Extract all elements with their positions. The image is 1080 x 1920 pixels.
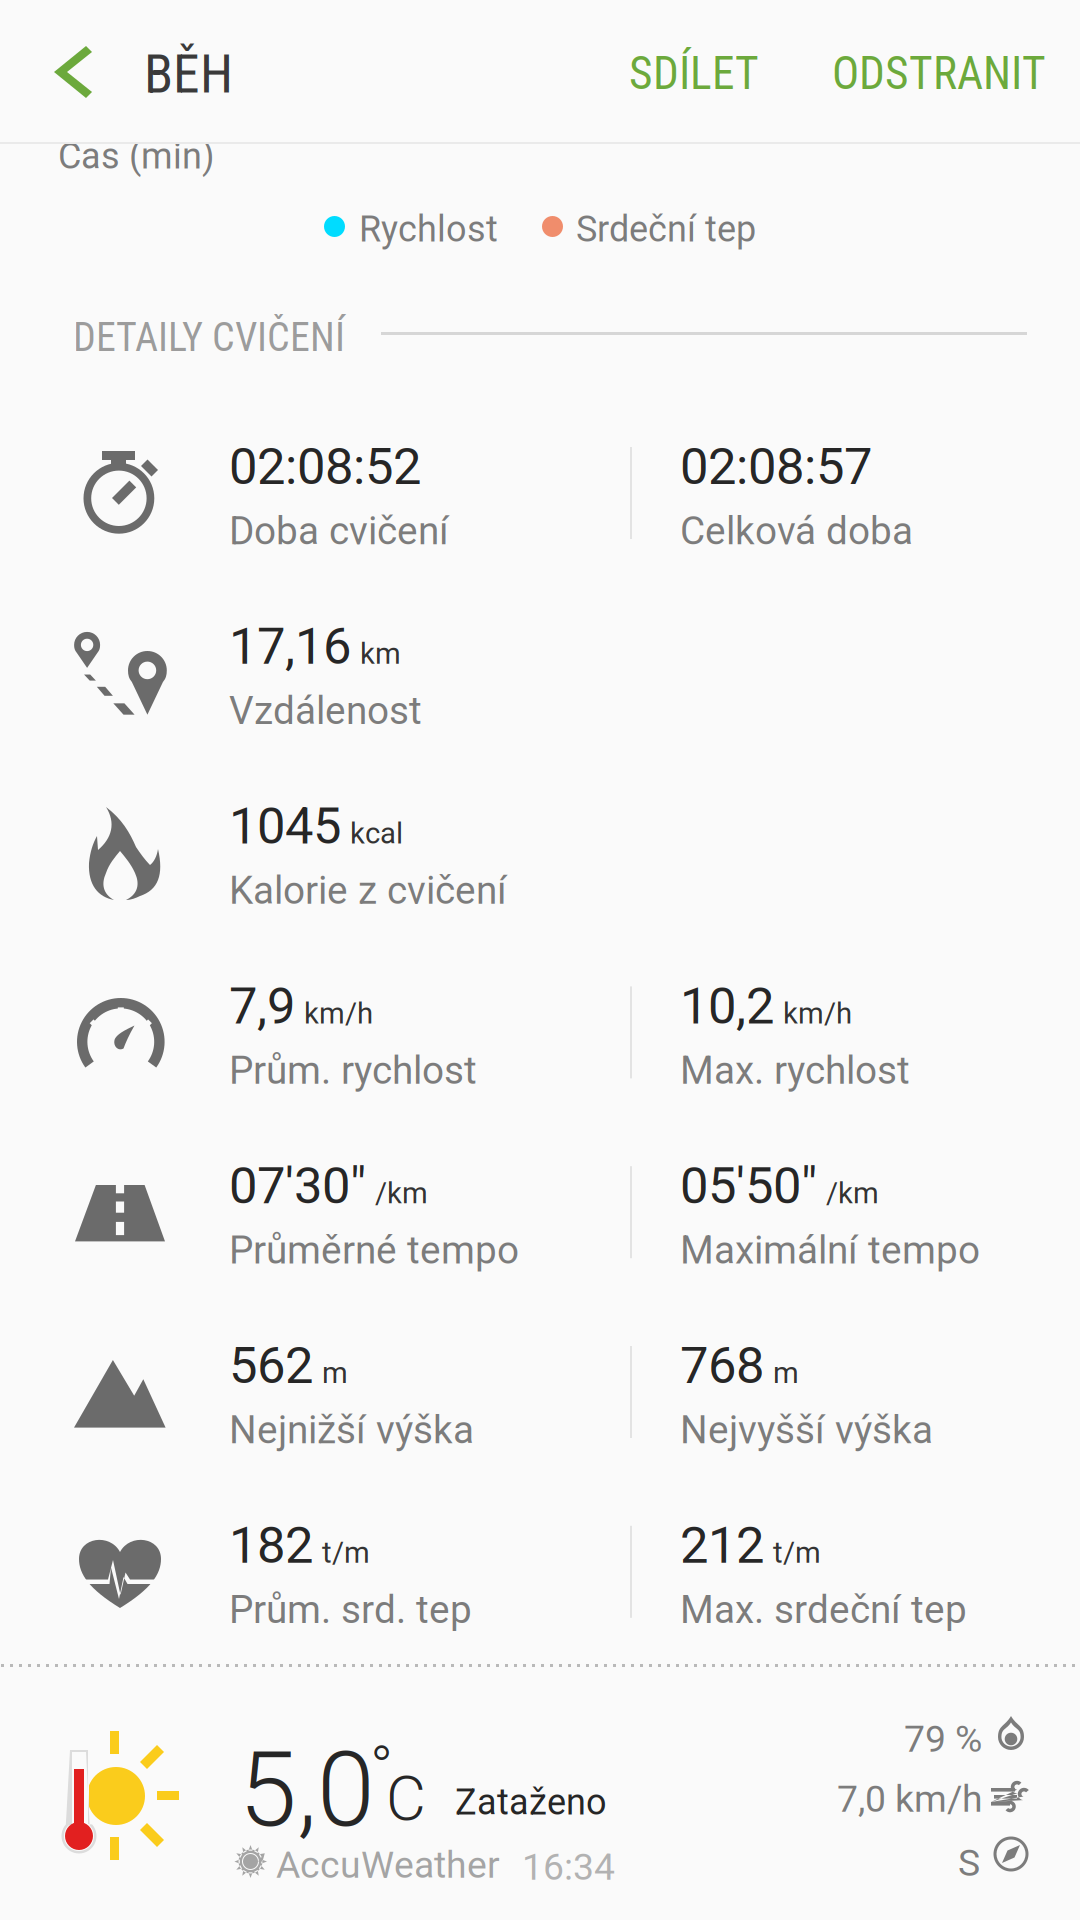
staticText: BĚH <box>144 43 233 105</box>
staticText: 10,2 <box>680 976 774 1036</box>
staticText: ODSTRANIT <box>832 47 1046 100</box>
button[interactable]: BĚH <box>144 0 253 162</box>
staticText: Max. rychlost <box>680 1048 910 1093</box>
staticText: Doba cvičení <box>229 508 449 554</box>
staticText: 17,16 <box>229 617 351 676</box>
staticText: ° <box>370 1732 393 1804</box>
staticText: 05'50" <box>680 1156 817 1216</box>
staticText: t/m <box>322 1536 370 1570</box>
staticText: 7,0 km/h <box>837 1777 983 1821</box>
staticText: Nejvyšší výška <box>680 1407 933 1453</box>
staticText: 562 <box>229 1336 313 1395</box>
staticText: m <box>773 1356 799 1390</box>
staticText: Průměrné tempo <box>229 1228 519 1273</box>
staticText: km/h <box>783 996 852 1031</box>
staticText: kcal <box>350 816 403 851</box>
button[interactable]: SDÍLET <box>603 0 789 159</box>
staticText: 02:08:52 <box>229 437 421 496</box>
staticText: 02:08:57 <box>680 437 872 496</box>
staticText: 212 <box>680 1516 764 1575</box>
staticText: Rychlost <box>359 208 498 250</box>
staticText: SDÍLET <box>629 47 759 100</box>
staticText: Celková doba <box>680 508 913 554</box>
staticText: /km <box>375 1176 428 1210</box>
button[interactable]: Back <box>0 0 142 142</box>
staticText: 5,0 <box>239 1729 375 1851</box>
staticText: Max. srdeční tep <box>680 1587 967 1632</box>
staticText: t/m <box>773 1536 821 1570</box>
staticText: Zataženo <box>455 1781 607 1823</box>
staticText: Kalorie z cvičení <box>229 868 507 913</box>
staticText: Prům. rychlost <box>229 1048 477 1093</box>
staticText: Prům. srd. tep <box>229 1587 472 1632</box>
staticText: 182 <box>229 1516 313 1575</box>
staticText: /km <box>826 1176 879 1210</box>
staticText: 07'30" <box>229 1156 366 1216</box>
staticText: S <box>958 1841 980 1885</box>
staticText: 16:34 <box>522 1845 615 1889</box>
staticText: 7,9 <box>229 976 295 1036</box>
staticText: AccuWeather <box>276 1843 500 1887</box>
staticText: km/h <box>304 996 373 1031</box>
staticText: km <box>360 637 401 671</box>
staticText: 79 % <box>904 1717 982 1761</box>
staticText: Vzdálenost <box>229 688 422 733</box>
staticText: Nejnižší výška <box>229 1407 474 1453</box>
staticText: C <box>386 1763 426 1835</box>
button[interactable]: ODSTRANIT <box>806 0 1080 159</box>
staticText: Maximální tempo <box>680 1228 980 1273</box>
staticText: Čas (min) <box>58 135 215 177</box>
staticText: 1045 <box>229 797 341 856</box>
staticText: Srdeční tep <box>576 208 756 250</box>
staticText: 768 <box>680 1336 764 1395</box>
staticText: DETAILY CVIČENÍ <box>73 314 345 361</box>
staticText: m <box>322 1356 348 1390</box>
